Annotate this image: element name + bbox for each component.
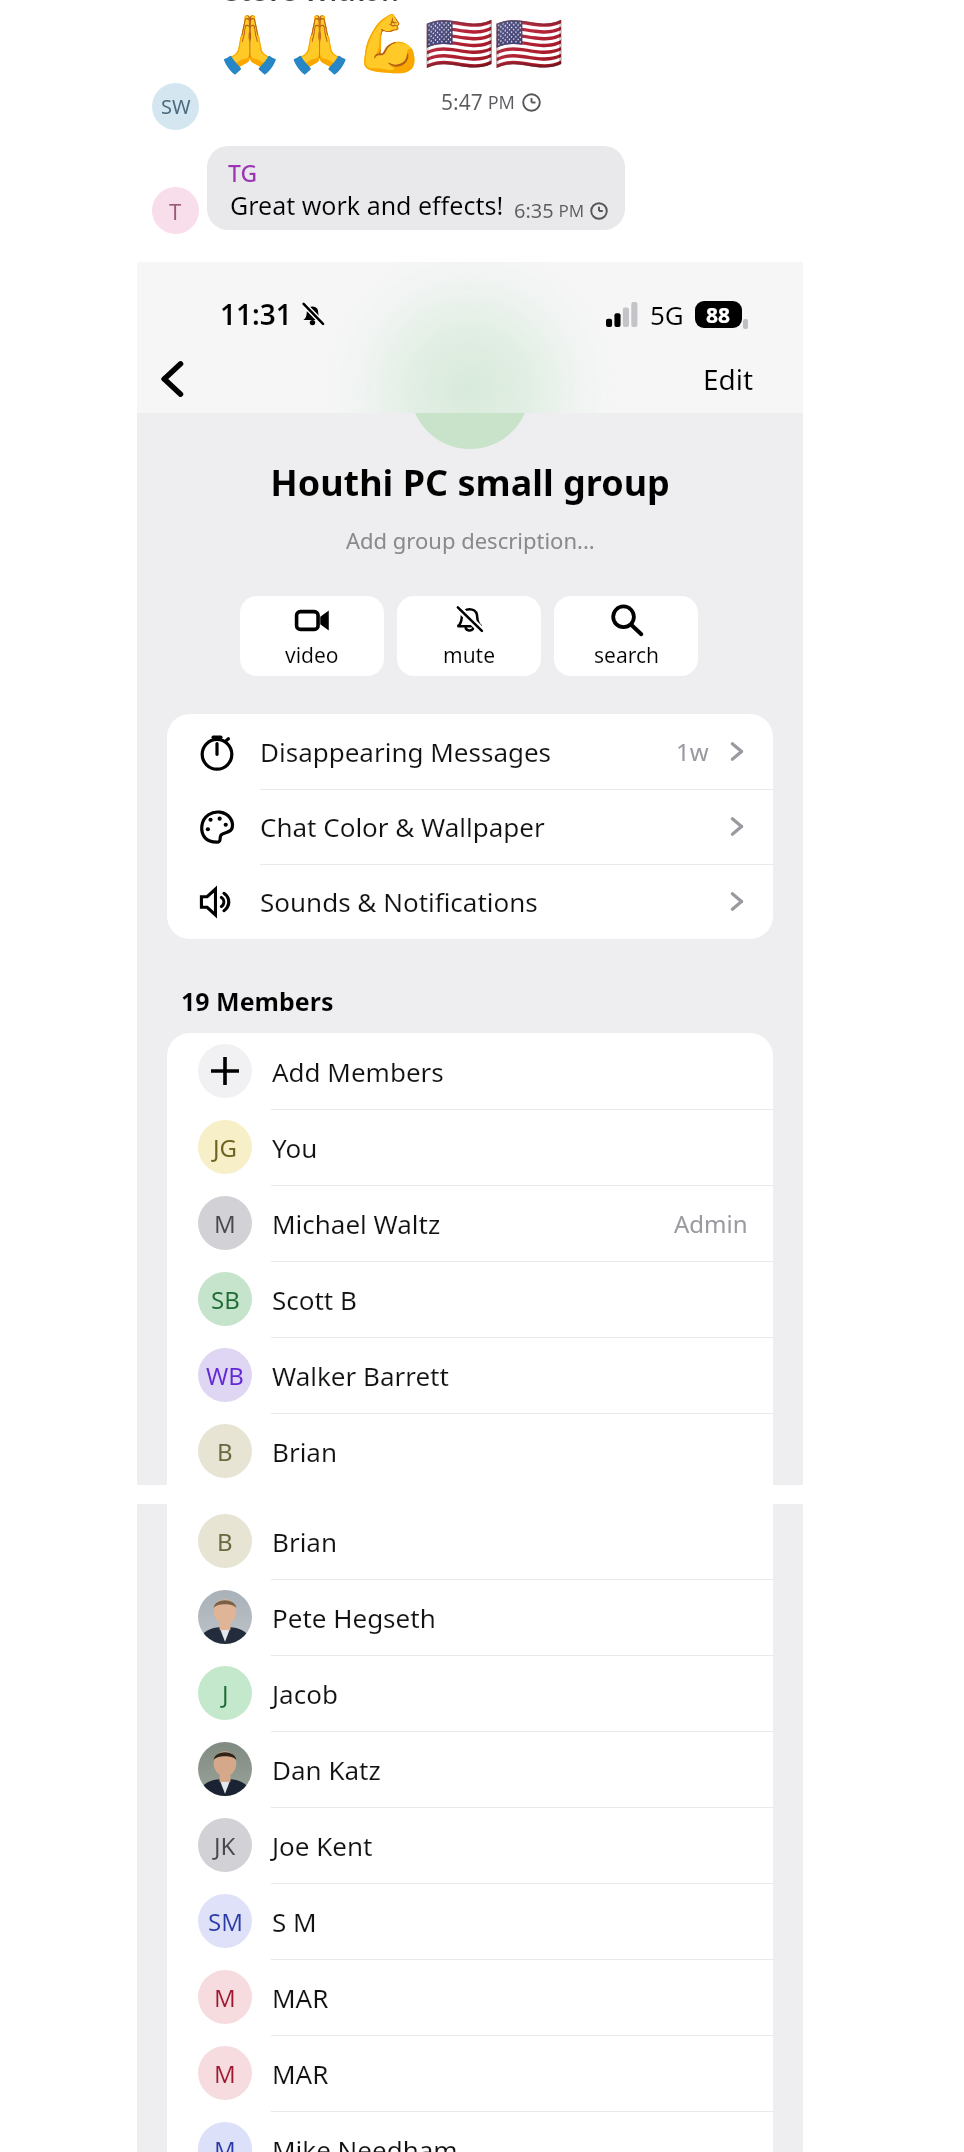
staticText: 5G [650, 297, 684, 332]
staticText: Great work and effects! [230, 188, 504, 222]
staticText: M [214, 2133, 236, 2152]
button[interactable]: Add Members [167, 1033, 773, 1109]
button[interactable]: M [167, 2111, 773, 2152]
staticText: T [169, 196, 182, 226]
staticText: SW [161, 93, 191, 120]
staticText: 1w [676, 735, 709, 768]
button[interactable]: Back [145, 351, 201, 407]
staticText: Dan Katz [272, 1752, 381, 1787]
button[interactable]: Edit [685, 351, 771, 407]
staticText: Steve Witkoff [225, 0, 401, 9]
button[interactable]: M [167, 2035, 773, 2111]
staticText: PM [483, 90, 515, 115]
staticText: mute [443, 641, 496, 670]
staticText: Brian [272, 1524, 338, 1559]
button[interactable]: SM [167, 1883, 773, 1959]
staticText: SB [211, 1283, 240, 1316]
staticText: J [222, 1677, 229, 1710]
staticText: Chat Color & Wallpaper [260, 809, 545, 844]
button[interactable]: SB [167, 1261, 773, 1337]
button[interactable]: JG [167, 1109, 773, 1185]
button[interactable]: Disappearing Messages [167, 714, 773, 789]
staticText: 🙏🙏💪🇺🇸🇺🇸 [215, 11, 564, 77]
staticText: JG [213, 1131, 238, 1164]
button[interactable]: Sounds & Notifications [167, 864, 773, 939]
staticText: B [217, 1435, 233, 1468]
staticText: JK [214, 1829, 236, 1862]
button[interactable]: B [167, 1504, 773, 1579]
staticText: 5:47 [441, 88, 483, 117]
button[interactable]: Pete Hegseth [167, 1579, 773, 1655]
staticText: Disappearing Messages [260, 734, 552, 769]
staticText: Admin [674, 1207, 748, 1240]
staticText: TG [228, 157, 258, 188]
staticText: Pete Hegseth [272, 1600, 436, 1635]
button[interactable]: M [167, 1185, 773, 1261]
staticText: B [217, 1525, 233, 1558]
staticText: Joe Kent [272, 1828, 373, 1863]
staticText: 6:35 [514, 197, 554, 224]
staticText: Scott B [272, 1282, 357, 1317]
button[interactable]: Chat Color & Wallpaper [167, 789, 773, 864]
staticText: Add Members [272, 1054, 444, 1089]
button[interactable]: J [167, 1655, 773, 1731]
staticText: M [214, 2057, 236, 2090]
staticText: S M [272, 1904, 317, 1939]
button[interactable]: Dan Katz [167, 1731, 773, 1807]
button[interactable]: B [167, 1413, 773, 1485]
staticText: M [214, 1981, 236, 2014]
staticText: WB [206, 1359, 244, 1392]
staticText: Brian [272, 1434, 338, 1469]
button[interactable]: video [240, 596, 384, 676]
staticText: SM [208, 1905, 243, 1938]
staticText: 88 [706, 301, 731, 328]
staticText: 11:31 [220, 295, 292, 333]
staticText: Mike Needham [272, 2132, 458, 2152]
staticText: MAR [272, 2056, 329, 2091]
button[interactable]: JK [167, 1807, 773, 1883]
staticText: Jacob [272, 1676, 338, 1711]
staticText: Sounds & Notifications [260, 884, 538, 919]
staticText: Add group description... [346, 525, 595, 555]
staticText: Michael Waltz [272, 1206, 441, 1241]
staticText: search [594, 641, 659, 670]
staticText: Houthi PC small group [270, 458, 670, 507]
button[interactable]: search [554, 596, 698, 676]
staticText: 19 Members [181, 984, 334, 1018]
staticText: Walker Barrett [272, 1358, 449, 1393]
button[interactable]: WB [167, 1337, 773, 1413]
staticText: MAR [272, 1980, 329, 2015]
button[interactable]: M [167, 1959, 773, 2035]
staticText: Edit [703, 360, 754, 398]
staticText: video [285, 641, 339, 670]
button[interactable]: mute [397, 596, 541, 676]
staticText: M [214, 1207, 236, 1240]
staticText: PM [554, 199, 585, 222]
staticText: You [272, 1130, 318, 1165]
